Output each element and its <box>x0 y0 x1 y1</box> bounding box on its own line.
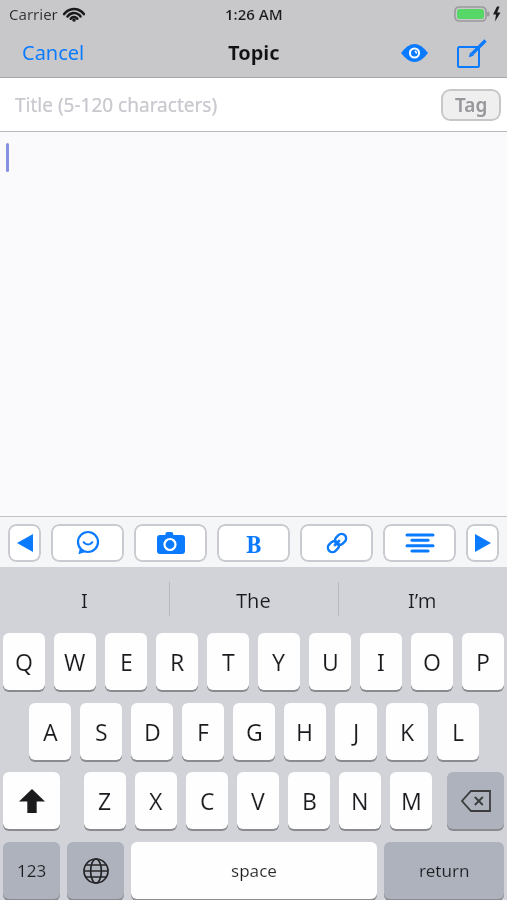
button[interactable] <box>8 524 41 562</box>
staticText: H <box>296 716 314 747</box>
staticText: T <box>222 646 235 677</box>
button[interactable] <box>447 772 504 829</box>
staticText: I’m <box>408 587 437 614</box>
button[interactable] <box>67 842 124 899</box>
button[interactable]: P <box>462 633 504 690</box>
staticText: I <box>81 587 88 614</box>
staticText: A <box>43 716 58 747</box>
staticText: M <box>401 785 422 816</box>
button[interactable]: T <box>207 633 249 690</box>
button[interactable]: space <box>131 842 377 899</box>
button[interactable]: O <box>411 633 453 690</box>
staticText: D <box>144 716 161 747</box>
button[interactable]: Y <box>258 633 300 690</box>
staticText: L <box>452 716 465 747</box>
button[interactable]: 123 <box>3 842 60 899</box>
staticText: J <box>353 716 360 747</box>
button[interactable]: B <box>288 772 330 829</box>
staticText: Tag <box>455 92 488 118</box>
button[interactable]: H <box>284 703 326 760</box>
staticText: Cancel <box>22 39 85 66</box>
staticText: N <box>351 785 369 816</box>
button[interactable]: C <box>186 772 228 829</box>
staticText: F <box>197 716 209 747</box>
staticText: X <box>149 785 163 816</box>
staticText: Title (5-120 characters) <box>15 92 218 118</box>
button[interactable]: K <box>386 703 428 760</box>
button[interactable]: S <box>80 703 122 760</box>
button[interactable]: The <box>169 567 338 633</box>
staticText: Topic <box>228 39 280 66</box>
staticText: O <box>423 646 441 677</box>
button[interactable] <box>466 524 499 562</box>
button[interactable] <box>3 772 60 829</box>
button[interactable]: J <box>335 703 377 760</box>
button[interactable]: L <box>437 703 479 760</box>
staticText: P <box>476 646 490 677</box>
button[interactable] <box>399 40 429 66</box>
staticText: The <box>236 587 271 614</box>
button[interactable]: Tag <box>441 89 501 121</box>
staticText: S <box>95 716 108 747</box>
button[interactable]: F <box>182 703 224 760</box>
button[interactable]: U <box>309 633 351 690</box>
staticText: space <box>231 859 277 882</box>
staticText: B <box>302 785 317 816</box>
button[interactable]: return <box>384 842 504 899</box>
button[interactable]: X <box>135 772 177 829</box>
button[interactable]: E <box>105 633 147 690</box>
button[interactable] <box>300 524 373 562</box>
staticText: Z <box>98 785 112 816</box>
staticText: Q <box>15 646 33 677</box>
button[interactable]: R <box>156 633 198 690</box>
button[interactable] <box>51 524 124 562</box>
staticText: 123 <box>17 859 47 882</box>
button[interactable] <box>383 524 456 562</box>
button[interactable] <box>454 34 492 72</box>
staticText: W <box>64 646 86 677</box>
button[interactable]: A <box>29 703 71 760</box>
button[interactable]: V <box>237 772 279 829</box>
staticText: U <box>322 646 339 677</box>
staticText: G <box>246 716 263 747</box>
staticText: B <box>246 528 262 559</box>
staticText: return <box>419 859 470 882</box>
staticText: I <box>377 646 385 677</box>
button[interactable]: Cancel <box>12 35 95 70</box>
staticText: 1:26 AM <box>225 4 283 24</box>
staticText: Y <box>272 646 286 677</box>
staticText: E <box>120 646 133 677</box>
button[interactable]: I <box>0 567 169 633</box>
staticText: C <box>200 785 215 816</box>
staticText: Carrier <box>9 4 58 24</box>
button[interactable]: B <box>217 524 290 562</box>
button[interactable]: D <box>131 703 173 760</box>
button[interactable]: I <box>360 633 402 690</box>
staticText: V <box>251 785 265 816</box>
button[interactable]: Q <box>3 633 45 690</box>
button[interactable]: G <box>233 703 275 760</box>
button[interactable]: Z <box>84 772 126 829</box>
button[interactable] <box>134 524 207 562</box>
button[interactable]: M <box>390 772 432 829</box>
button[interactable]: W <box>54 633 96 690</box>
staticText: K <box>400 716 415 747</box>
button[interactable]: I’m <box>338 567 507 633</box>
staticText: R <box>170 646 185 677</box>
button[interactable]: N <box>339 772 381 829</box>
